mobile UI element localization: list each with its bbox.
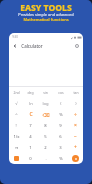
button[interactable]: deg bbox=[23, 87, 38, 98]
staticText: cos bbox=[58, 90, 64, 95]
button[interactable]: × bbox=[68, 120, 83, 131]
staticText: 2 bbox=[44, 145, 47, 151]
button[interactable]: ÷ bbox=[68, 109, 83, 120]
button[interactable]: 5 bbox=[38, 131, 53, 142]
button[interactable]: sin bbox=[38, 87, 53, 98]
staticText: deg bbox=[27, 90, 34, 95]
staticText: C bbox=[29, 111, 33, 118]
button[interactable]: 2 bbox=[38, 142, 53, 153]
button[interactable]: 8 bbox=[38, 120, 53, 131]
staticText: × bbox=[74, 122, 77, 129]
button[interactable] bbox=[9, 153, 23, 164]
button[interactable]: ! bbox=[9, 120, 23, 131]
button[interactable]: 1 bbox=[23, 142, 38, 153]
staticText: 6 bbox=[59, 134, 62, 140]
button[interactable]: ln bbox=[23, 98, 38, 109]
staticText: + bbox=[74, 144, 77, 151]
button[interactable]: tan bbox=[68, 87, 83, 98]
button[interactable]: ( bbox=[53, 98, 68, 109]
staticText: 2nd bbox=[13, 90, 20, 95]
staticText: Provides simple and advanced bbox=[0, 12, 92, 17]
button[interactable]: 1/x bbox=[9, 131, 23, 142]
button[interactable]: − bbox=[68, 131, 83, 142]
staticText: Calculator bbox=[21, 43, 43, 49]
staticText: ) bbox=[75, 101, 77, 107]
button[interactable]: 7 bbox=[23, 120, 38, 131]
button[interactable]: π bbox=[9, 142, 23, 153]
staticText: Mathematical functions bbox=[0, 17, 92, 22]
button[interactable]: 4 bbox=[23, 131, 38, 142]
button[interactable]: 2nd bbox=[9, 87, 23, 98]
staticText: ÷ bbox=[74, 111, 77, 118]
staticText: . bbox=[45, 156, 47, 162]
button[interactable]: + bbox=[68, 142, 83, 153]
staticText: 4 bbox=[29, 134, 32, 140]
button[interactable]: 6 bbox=[53, 131, 68, 142]
staticText: EASY TOOLS bbox=[0, 2, 92, 14]
staticText: sin bbox=[43, 90, 48, 95]
button[interactable]: % bbox=[53, 109, 68, 120]
staticText: % bbox=[59, 112, 63, 118]
staticText: % bbox=[59, 156, 63, 162]
button[interactable]: log bbox=[38, 98, 53, 109]
staticText: − bbox=[74, 133, 77, 140]
staticText: = bbox=[75, 156, 77, 161]
staticText: ^ bbox=[15, 112, 18, 118]
button[interactable]: ) bbox=[68, 98, 83, 109]
staticText: log bbox=[42, 101, 49, 107]
staticText: 1 bbox=[29, 145, 32, 151]
button[interactable]: √ bbox=[9, 98, 23, 109]
button[interactable]: Settings bbox=[74, 43, 80, 49]
staticText: 0 bbox=[29, 156, 32, 162]
button[interactable]: Back bbox=[12, 43, 18, 49]
staticText: √ bbox=[15, 101, 18, 106]
staticText: ! bbox=[15, 123, 17, 129]
staticText: ⌫ bbox=[42, 112, 50, 118]
button[interactable]: cos bbox=[53, 87, 68, 98]
staticText: 3 bbox=[59, 145, 62, 151]
staticText: π bbox=[15, 145, 18, 151]
staticText: ( bbox=[60, 101, 62, 107]
button[interactable]: 3 bbox=[53, 142, 68, 153]
button[interactable]: % bbox=[53, 153, 68, 164]
button[interactable]: C bbox=[23, 109, 38, 120]
button[interactable]: ^ bbox=[9, 109, 23, 120]
button[interactable]: 9 bbox=[53, 120, 68, 131]
staticText: 8 bbox=[44, 123, 47, 129]
staticText: 5 bbox=[44, 134, 47, 140]
button[interactable]: 0 bbox=[23, 153, 38, 164]
staticText: 9 bbox=[59, 123, 62, 129]
staticText: 7 bbox=[29, 123, 32, 129]
button[interactable]: = bbox=[68, 153, 83, 164]
staticText: 9:30 bbox=[12, 35, 18, 39]
staticText: tan bbox=[73, 90, 79, 95]
staticText: ln bbox=[29, 101, 33, 107]
button[interactable]: ⌫ bbox=[38, 109, 53, 120]
staticText: 1/x bbox=[13, 134, 20, 140]
